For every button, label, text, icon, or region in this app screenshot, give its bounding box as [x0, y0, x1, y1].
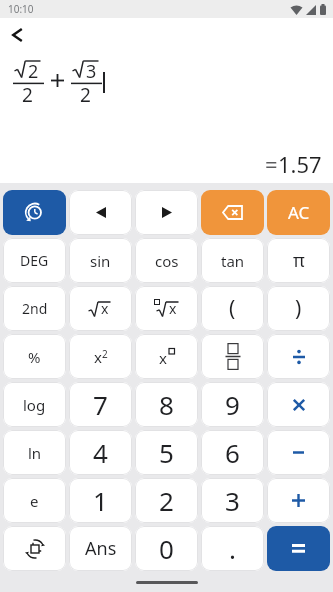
button[interactable]: π	[267, 238, 330, 283]
staticText: π	[293, 248, 305, 273]
button[interactable]	[267, 526, 330, 571]
button[interactable]: 8	[135, 382, 198, 427]
staticText: 5	[159, 435, 174, 470]
staticText: (	[229, 294, 236, 323]
button[interactable]: log	[3, 382, 66, 427]
staticText: 2	[80, 82, 91, 108]
button[interactable]: sin	[69, 238, 132, 283]
staticText: 3	[86, 59, 97, 84]
button[interactable]: %	[3, 334, 66, 379]
button[interactable]	[201, 334, 264, 379]
button[interactable]	[4, 22, 30, 48]
button[interactable]: 3	[201, 478, 264, 523]
button[interactable]: ln	[3, 430, 66, 475]
staticText: 10:10	[8, 2, 34, 16]
staticText: ln	[28, 443, 42, 463]
staticText: 4	[93, 435, 108, 470]
button[interactable]: 5	[135, 430, 198, 475]
staticText: x	[101, 299, 109, 318]
button[interactable]	[3, 526, 66, 571]
staticText: e	[30, 491, 39, 511]
staticText: %	[28, 347, 41, 367]
staticText: DEG	[20, 251, 49, 270]
staticText: 3	[225, 483, 240, 518]
staticText: tan	[221, 251, 245, 271]
button[interactable]: 2	[135, 478, 198, 523]
button[interactable]: )	[267, 286, 330, 331]
button[interactable]	[69, 190, 132, 235]
button[interactable]: 0	[135, 526, 198, 571]
staticText: cos	[155, 251, 179, 271]
staticText: x2	[94, 347, 108, 367]
button[interactable]: AC	[267, 190, 330, 235]
button[interactable]: x	[69, 286, 132, 331]
staticText: 2	[28, 59, 39, 84]
button[interactable]: 7	[69, 382, 132, 427]
button[interactable]	[201, 190, 264, 235]
button[interactable]: cos	[135, 238, 198, 283]
button[interactable]: x2	[69, 334, 132, 379]
staticText: 7	[93, 387, 108, 422]
staticText: .	[229, 531, 236, 566]
staticText: log	[23, 395, 46, 415]
button[interactable]: 6	[201, 430, 264, 475]
staticText: 9	[225, 387, 240, 422]
button[interactable]	[135, 190, 198, 235]
staticText: sin	[90, 251, 111, 271]
button[interactable]: x	[135, 334, 198, 379]
button[interactable]: 9	[201, 382, 264, 427]
staticText: 0	[159, 531, 174, 566]
button[interactable]: tan	[201, 238, 264, 283]
staticText: Ans	[85, 536, 117, 561]
button[interactable]	[3, 190, 66, 235]
button[interactable]	[267, 334, 330, 379]
staticText: 6	[225, 435, 240, 470]
button[interactable]: e	[3, 478, 66, 523]
staticText: x	[159, 348, 167, 368]
button[interactable]: 2nd	[3, 286, 66, 331]
button[interactable]: 1	[69, 478, 132, 523]
button[interactable]: 4	[69, 430, 132, 475]
staticText: 1.57	[278, 149, 322, 179]
staticText: 8	[159, 387, 174, 422]
staticText: 1	[93, 483, 108, 518]
staticText: )	[295, 294, 302, 323]
staticText: 2nd	[22, 299, 48, 318]
staticText: =	[265, 149, 278, 179]
staticText: AC	[288, 201, 310, 224]
button[interactable]: DEG	[3, 238, 66, 283]
staticText: x	[169, 299, 177, 318]
button[interactable]: (	[201, 286, 264, 331]
button[interactable]: Ans	[69, 526, 132, 571]
staticText: 2	[159, 483, 174, 518]
staticText: 2	[22, 82, 33, 108]
button[interactable]: .	[201, 526, 264, 571]
button[interactable]	[267, 430, 330, 475]
button[interactable]: x	[135, 286, 198, 331]
button[interactable]	[267, 478, 330, 523]
button[interactable]	[267, 382, 330, 427]
